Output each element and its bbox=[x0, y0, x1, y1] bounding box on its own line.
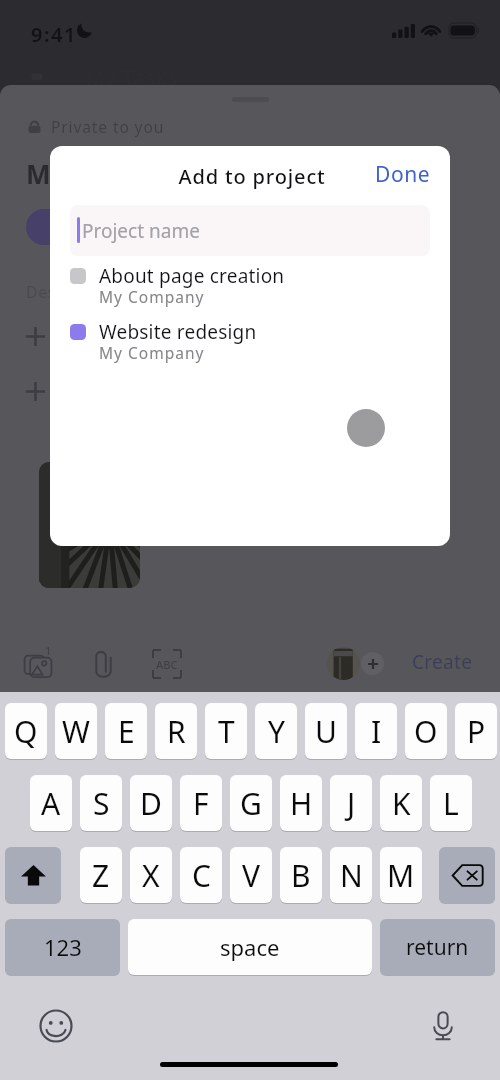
button[interactable]: G bbox=[230, 775, 272, 831]
button[interactable]: I bbox=[355, 703, 397, 759]
staticText: Project name bbox=[82, 218, 200, 244]
staticText: Private to you bbox=[51, 116, 165, 137]
button[interactable]: About page creation bbox=[50, 263, 450, 318]
staticText: 1 bbox=[45, 643, 52, 658]
staticText: A bbox=[41, 783, 61, 824]
button[interactable]: B bbox=[280, 847, 322, 903]
button[interactable]: X bbox=[130, 847, 172, 903]
staticText: N bbox=[340, 855, 363, 896]
button[interactable]: Dictation bbox=[423, 1006, 463, 1046]
button[interactable]: Shift bbox=[5, 847, 61, 903]
staticText: K bbox=[392, 783, 411, 824]
button[interactable]: Assignee bbox=[327, 647, 360, 680]
button[interactable]: Y bbox=[255, 703, 297, 759]
button[interactable]: P bbox=[455, 703, 497, 759]
staticText: 123 bbox=[44, 932, 82, 962]
staticText: L bbox=[443, 783, 459, 824]
staticText: My Tasks bbox=[86, 64, 179, 91]
staticText: My Company bbox=[99, 342, 205, 363]
button[interactable]: K bbox=[380, 775, 422, 831]
staticText: C bbox=[192, 855, 211, 896]
button[interactable]: Add attachment bbox=[0, 371, 500, 413]
button[interactable]: Attach file bbox=[81, 642, 125, 686]
staticText: space bbox=[220, 932, 280, 962]
button[interactable]: C bbox=[180, 847, 222, 903]
staticText: Y bbox=[268, 711, 285, 752]
button[interactable]: L bbox=[430, 775, 472, 831]
button[interactable]: Create bbox=[400, 642, 484, 682]
button[interactable]: Scan text bbox=[145, 642, 189, 686]
staticText: ABC bbox=[156, 657, 178, 672]
button[interactable]: Loading bbox=[347, 409, 385, 447]
staticText: W bbox=[62, 711, 90, 752]
button[interactable]: D bbox=[130, 775, 172, 831]
staticText: My Company bbox=[99, 286, 205, 307]
button[interactable]: Website redesign bbox=[50, 319, 450, 374]
staticText: Website redesign bbox=[99, 319, 257, 345]
staticText: G bbox=[240, 783, 262, 824]
button[interactable]: H bbox=[280, 775, 322, 831]
staticText: About page creation bbox=[99, 263, 285, 289]
button[interactable]: Done bbox=[368, 155, 438, 193]
staticText: My Tasks bbox=[26, 156, 151, 191]
button[interactable]: 123 bbox=[5, 919, 120, 975]
button[interactable]: Add subtask bbox=[0, 316, 500, 358]
staticText: R bbox=[167, 711, 186, 752]
button[interactable]: W bbox=[55, 703, 97, 759]
button[interactable]: T bbox=[205, 703, 247, 759]
staticText: E bbox=[118, 711, 135, 752]
staticText: J bbox=[347, 783, 356, 824]
button[interactable]: space bbox=[128, 919, 372, 975]
staticText: X bbox=[142, 855, 160, 896]
button[interactable]: V bbox=[230, 847, 272, 903]
button[interactable]: Emoji bbox=[36, 1006, 76, 1046]
button[interactable]: Photos bbox=[16, 642, 60, 686]
staticText: B bbox=[291, 855, 311, 896]
button[interactable]: 7 bbox=[26, 209, 89, 245]
button[interactable]: J bbox=[330, 775, 372, 831]
button[interactable]: Z bbox=[80, 847, 122, 903]
staticText: I bbox=[371, 711, 382, 752]
staticText: D bbox=[140, 783, 162, 824]
button[interactable]: R bbox=[155, 703, 197, 759]
button[interactable]: return bbox=[380, 919, 495, 975]
button[interactable]: U bbox=[305, 703, 347, 759]
button[interactable]: Project name bbox=[70, 205, 430, 256]
staticText: 9:41 bbox=[31, 21, 77, 48]
staticText: Create bbox=[412, 649, 473, 675]
staticText: O bbox=[414, 711, 438, 752]
button[interactable]: N bbox=[330, 847, 372, 903]
staticText: T bbox=[218, 711, 235, 752]
staticText: P bbox=[467, 711, 486, 752]
staticText: return bbox=[406, 933, 469, 962]
staticText: S bbox=[93, 783, 110, 824]
button[interactable]: Q bbox=[5, 703, 47, 759]
staticText: Description bbox=[26, 281, 120, 302]
staticText: U bbox=[315, 711, 337, 752]
staticText: Done bbox=[375, 160, 431, 189]
button[interactable]: S bbox=[80, 775, 122, 831]
button[interactable]: M bbox=[380, 847, 422, 903]
button[interactable]: F bbox=[180, 775, 222, 831]
button[interactable]: E bbox=[105, 703, 147, 759]
button[interactable]: Photo attachment bbox=[39, 462, 140, 588]
button[interactable]: Add assignee bbox=[361, 652, 384, 675]
button[interactable]: A bbox=[30, 775, 72, 831]
staticText: M bbox=[387, 855, 415, 896]
staticText: Add to project bbox=[52, 163, 450, 190]
button[interactable]: Backspace bbox=[439, 847, 495, 903]
staticText: Z bbox=[92, 855, 110, 896]
staticText: F bbox=[193, 783, 209, 824]
staticText: V bbox=[242, 855, 260, 896]
button[interactable]: O bbox=[405, 703, 447, 759]
staticText: Q bbox=[14, 711, 38, 752]
staticText: H bbox=[290, 783, 313, 824]
